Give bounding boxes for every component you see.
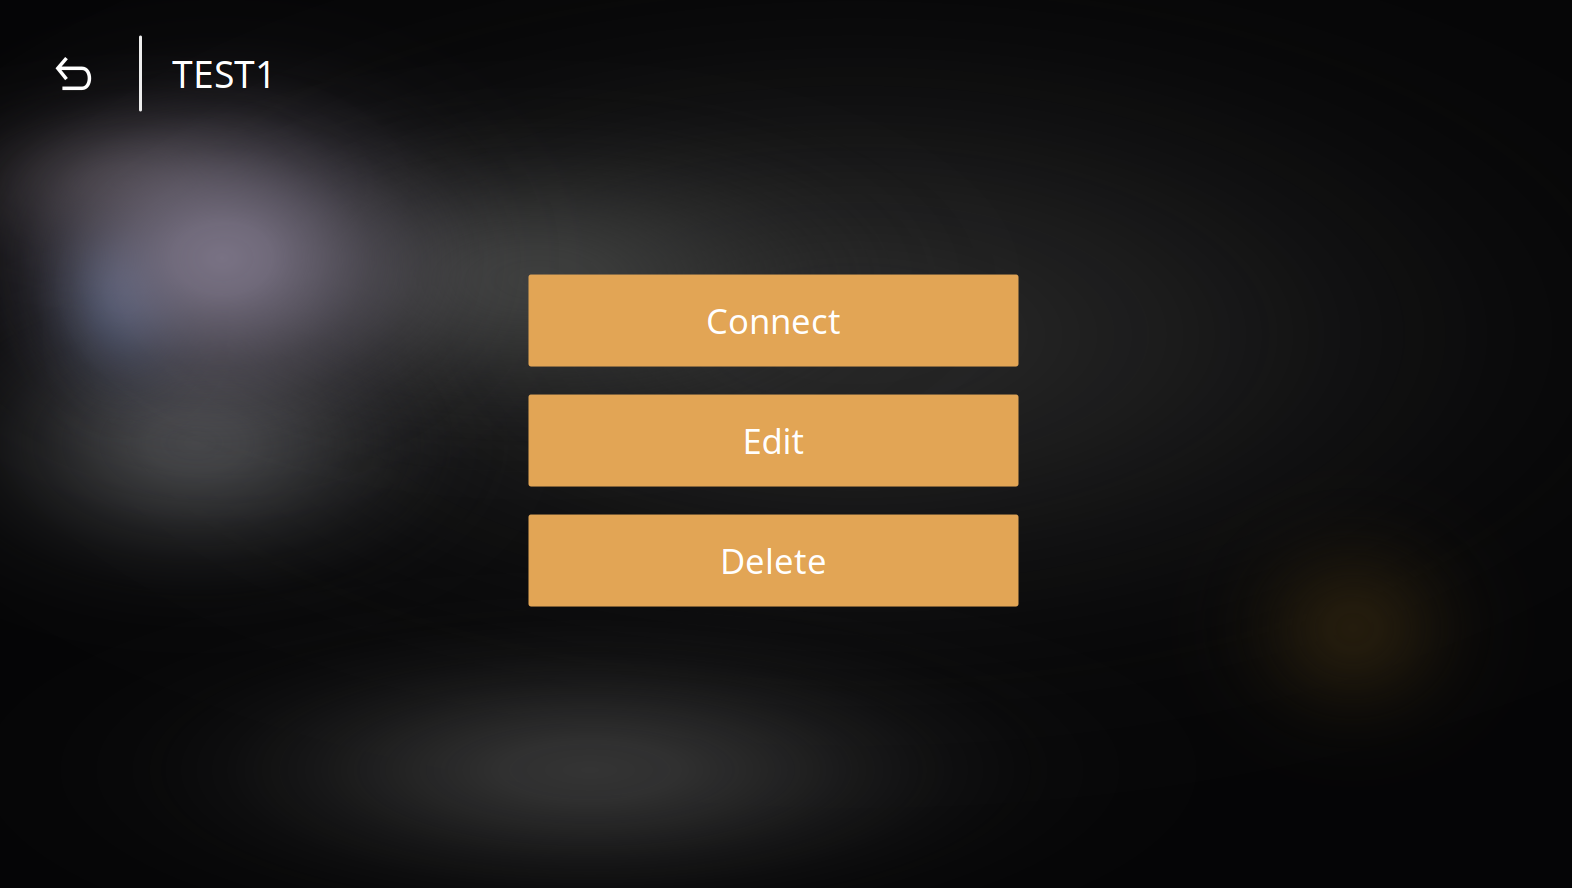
staticText: Delete — [720, 537, 827, 583]
staticText: Edit — [742, 417, 804, 463]
button[interactable]: Connect — [528, 274, 1018, 366]
staticText: TEST1 — [172, 49, 276, 98]
button[interactable]: Delete — [528, 514, 1018, 606]
button[interactable]: Back — [31, 32, 115, 116]
button[interactable]: Edit — [528, 394, 1018, 486]
staticText: Connect — [706, 297, 841, 343]
